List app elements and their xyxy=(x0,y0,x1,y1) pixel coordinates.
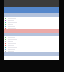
button[interactable] xyxy=(4,46,59,48)
button[interactable] xyxy=(4,44,59,46)
button[interactable] xyxy=(4,42,59,44)
button[interactable] xyxy=(4,38,59,40)
button[interactable] xyxy=(4,40,59,42)
button[interactable] xyxy=(4,36,59,38)
button[interactable] xyxy=(4,21,59,23)
button[interactable] xyxy=(4,17,59,19)
button[interactable] xyxy=(4,23,59,25)
button[interactable] xyxy=(4,48,59,50)
button[interactable] xyxy=(4,50,59,52)
button[interactable] xyxy=(4,27,59,29)
button[interactable] xyxy=(4,25,59,27)
button[interactable] xyxy=(4,19,59,21)
